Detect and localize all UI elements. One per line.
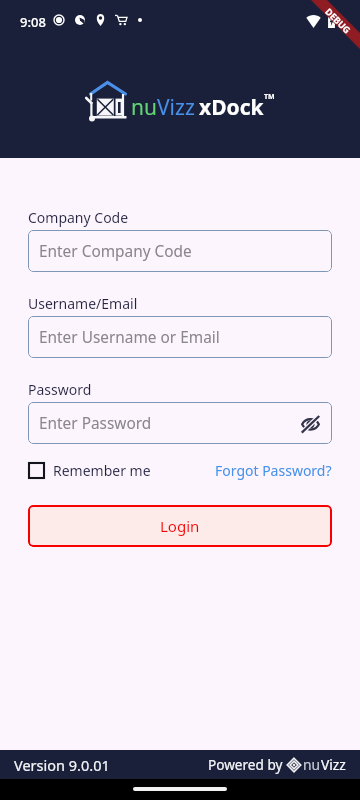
staticText: Powered by xyxy=(208,755,283,774)
staticText: Enter Username or Email xyxy=(39,327,220,348)
staticText: 9:08 xyxy=(20,13,46,31)
staticText: Company Code xyxy=(28,208,129,227)
staticText: Remember me xyxy=(53,461,151,480)
staticText: Login xyxy=(160,516,200,536)
staticText: Enter Company Code xyxy=(39,241,192,262)
button[interactable]: Enter Password xyxy=(28,402,332,444)
button[interactable]: Login xyxy=(28,505,332,547)
staticText: nu xyxy=(303,755,321,774)
staticText: Version 9.0.01 xyxy=(14,755,110,775)
staticText: Enter Password xyxy=(39,413,152,434)
staticText: xDock xyxy=(199,93,264,122)
staticText: nu xyxy=(131,93,157,122)
button[interactable]: Toggle password visibility xyxy=(300,413,321,434)
staticText: Vizz xyxy=(321,755,346,774)
button[interactable]: Forgot Password? xyxy=(215,461,332,480)
staticText: DEBUG xyxy=(323,5,354,36)
staticText: Username/Email xyxy=(28,294,138,313)
staticText: Password xyxy=(28,380,92,399)
button[interactable]: Enter Company Code xyxy=(28,230,332,272)
button[interactable]: Enter Username or Email xyxy=(28,316,332,358)
button[interactable]: Remember me xyxy=(28,461,151,480)
staticText: Vizz xyxy=(157,93,195,122)
staticText: TM xyxy=(264,92,275,102)
